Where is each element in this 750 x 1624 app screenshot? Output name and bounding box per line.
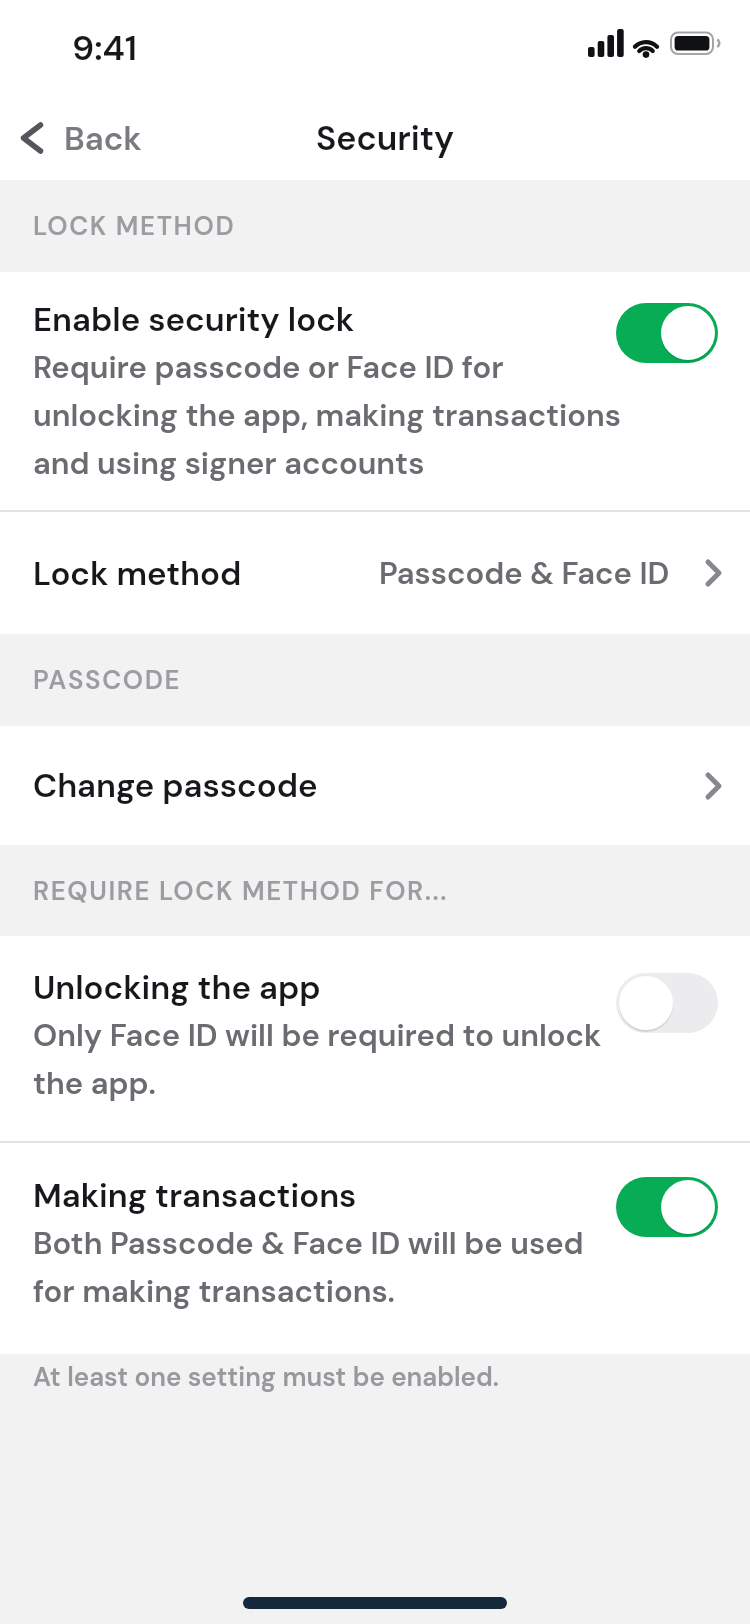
staticText: Require passcode or Face ID for unlockin… — [33, 347, 621, 483]
staticText: Enable security lock — [33, 298, 355, 341]
button[interactable]: Enable security lock — [0, 272, 750, 512]
staticText: Passcode & Face ID — [379, 553, 670, 593]
button[interactable]: Making transactions — [0, 1143, 750, 1354]
staticText: Making transactions — [33, 1174, 357, 1217]
staticText: Back — [64, 117, 142, 160]
button[interactable]: Back — [12, 112, 152, 164]
button[interactable]: Unlocking the app — [0, 936, 750, 1143]
button[interactable] — [616, 1177, 718, 1237]
button[interactable] — [616, 973, 718, 1033]
staticText: Unlocking the app — [33, 966, 321, 1009]
staticText: PASSCODE — [33, 663, 182, 697]
staticText: At least one setting must be enabled. — [33, 1360, 499, 1394]
button[interactable]: Lock method — [0, 512, 750, 634]
staticText: Both Passcode & Face ID will be used for… — [33, 1223, 584, 1311]
staticText: LOCK METHOD — [33, 209, 236, 243]
staticText: Lock method — [33, 552, 242, 595]
button[interactable] — [616, 303, 718, 363]
staticText: Security — [316, 116, 455, 160]
button[interactable]: Change passcode — [0, 726, 750, 845]
staticText: 9:41 — [72, 25, 138, 71]
staticText: Only Face ID will be required to unlock … — [33, 1015, 602, 1103]
staticText: Change passcode — [33, 764, 318, 807]
staticText: REQUIRE LOCK METHOD FOR... — [33, 874, 448, 908]
